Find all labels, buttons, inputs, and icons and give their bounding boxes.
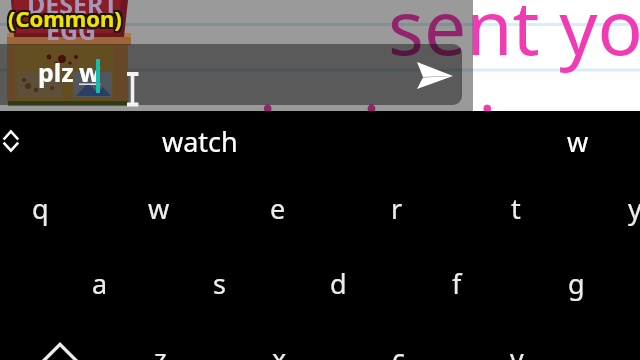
button[interactable]: Send [400, 44, 462, 105]
staticText: (Common) [6, 3, 120, 33]
staticText: s [213, 265, 226, 302]
staticText: (Common) [10, 3, 124, 33]
staticText: a [92, 265, 108, 302]
button[interactable]: z [101, 321, 219, 360]
button[interactable]: q [0, 171, 99, 246]
staticText: x [272, 340, 287, 360]
button[interactable]: w [100, 171, 218, 246]
staticText: (Common) [8, 3, 122, 33]
button[interactable]: Expand suggestions [0, 111, 40, 171]
staticText: g [568, 265, 585, 302]
button[interactable]: Shift [1, 321, 119, 360]
staticText: (Common) [6, 1, 120, 31]
staticText: DESERT [27, 0, 118, 21]
staticText: plz [38, 55, 81, 89]
button[interactable]: f [398, 246, 516, 321]
staticText: (Common) [6, 5, 120, 35]
button[interactable]: watch [140, 111, 260, 171]
staticText: e [270, 190, 286, 227]
staticText: d [330, 265, 347, 302]
staticText: v [510, 340, 524, 360]
staticText: w [567, 123, 589, 160]
button[interactable]: e [219, 171, 337, 246]
button[interactable]: y [576, 171, 640, 246]
button[interactable]: g [517, 246, 635, 321]
staticText: f [452, 265, 462, 302]
staticText: invitation t [258, 80, 636, 111]
button[interactable]: c [339, 321, 457, 360]
staticText: z [154, 340, 167, 360]
staticText: r [391, 190, 403, 227]
button[interactable]: v [458, 321, 576, 360]
staticText: EGG [46, 13, 97, 47]
button[interactable]: d [279, 246, 397, 321]
staticText: t [511, 190, 521, 227]
staticText: (Common) [8, 5, 122, 35]
button[interactable]: t [457, 171, 575, 246]
button[interactable]: s [160, 246, 278, 321]
button[interactable]: w [518, 111, 638, 171]
staticText: w [148, 190, 170, 227]
staticText: (Common) [10, 5, 124, 35]
button[interactable]: r [338, 171, 456, 246]
staticText: w [79, 55, 101, 89]
staticText: watch [162, 123, 238, 160]
staticText: (Common) [10, 1, 124, 31]
staticText: sent yo [388, 0, 640, 77]
button[interactable]: a [41, 246, 159, 321]
staticText: c [392, 340, 405, 360]
staticText: q [32, 190, 49, 227]
staticText: (Common) [8, 1, 122, 31]
button[interactable]: plz [0, 44, 462, 105]
button[interactable]: x [220, 321, 338, 360]
staticText: y [628, 190, 640, 227]
